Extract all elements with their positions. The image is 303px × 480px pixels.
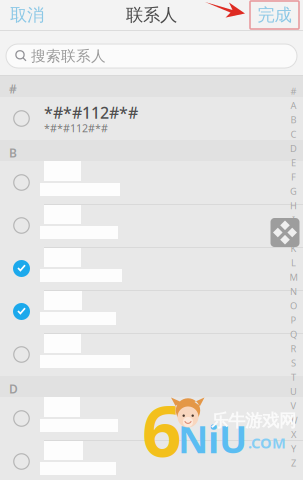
- staticText: F: [291, 171, 296, 183]
- button[interactable]: [0, 161, 303, 204]
- staticText: C: [290, 128, 296, 140]
- staticText: *#*#112#*#: [44, 102, 138, 123]
- staticText: V: [290, 400, 296, 412]
- staticText: 乐牛游戏网: [211, 410, 296, 431]
- button[interactable]: 搜索联系人: [6, 44, 297, 68]
- staticText: .COM: [248, 433, 286, 452]
- button[interactable]: Assistive Touch: [270, 218, 299, 247]
- button[interactable]: [0, 397, 303, 440]
- staticText: B: [9, 145, 17, 161]
- staticText: D: [290, 142, 297, 155]
- staticText: #: [9, 81, 17, 97]
- staticText: Z: [291, 457, 296, 469]
- staticText: 取消: [10, 4, 44, 26]
- staticText: NiU: [178, 414, 247, 464]
- staticText: Y: [291, 442, 296, 455]
- staticText: X: [291, 428, 296, 441]
- staticText: S: [291, 357, 296, 369]
- staticText: H: [290, 199, 297, 212]
- staticText: O: [290, 299, 297, 312]
- staticText: W: [289, 414, 298, 426]
- button[interactable]: *#*#112#*#: [0, 97, 303, 140]
- staticText: 搜索联系人: [31, 47, 106, 65]
- staticText: L: [291, 257, 296, 269]
- staticText: E: [291, 156, 296, 169]
- staticText: #: [290, 85, 296, 97]
- staticText: I: [292, 214, 295, 226]
- staticText: M: [289, 271, 297, 283]
- staticText: N: [290, 285, 297, 298]
- button[interactable]: [0, 290, 303, 333]
- staticText: T: [291, 371, 296, 383]
- staticText: 联系人: [126, 4, 177, 26]
- staticText: K: [290, 242, 296, 255]
- staticText: U: [290, 385, 297, 398]
- button[interactable]: Section index: [287, 84, 300, 470]
- button[interactable]: 取消: [0, 0, 56, 30]
- button[interactable]: [0, 204, 303, 247]
- button[interactable]: [0, 333, 303, 376]
- staticText: A: [290, 99, 296, 112]
- button[interactable]: [0, 440, 303, 480]
- staticText: J: [292, 228, 295, 240]
- staticText: 6: [142, 384, 182, 476]
- staticText: 完成: [257, 4, 291, 26]
- staticText: D: [9, 381, 18, 397]
- staticText: *#*#112#*#: [44, 121, 108, 135]
- staticText: R: [290, 342, 296, 355]
- staticText: B: [290, 114, 296, 126]
- button[interactable]: [0, 247, 303, 290]
- button[interactable]: 完成: [250, 1, 299, 29]
- staticText: G: [290, 185, 297, 197]
- staticText: P: [290, 314, 296, 326]
- staticText: Q: [290, 328, 297, 340]
